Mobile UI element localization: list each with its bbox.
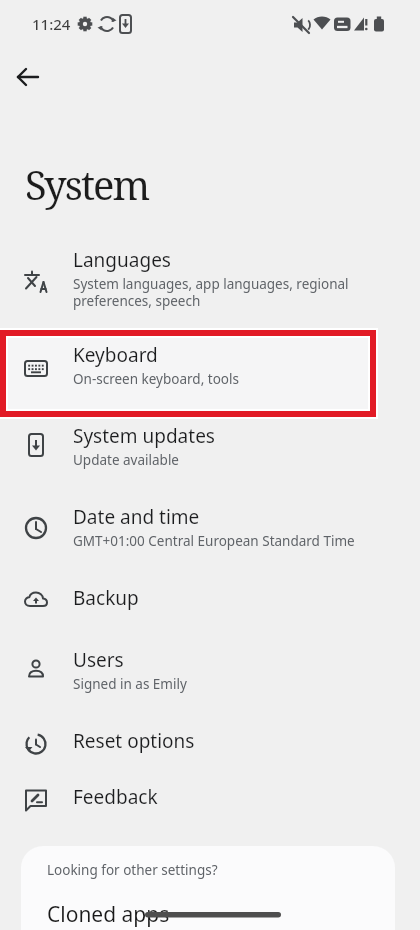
button[interactable]: System updates xyxy=(0,423,420,481)
button[interactable] xyxy=(10,59,46,95)
staticText: System xyxy=(25,157,149,211)
staticText: Looking for other settings? xyxy=(47,861,218,879)
button[interactable]: Languages xyxy=(0,247,420,313)
staticText: Feedback xyxy=(73,784,158,810)
staticText: System languages, app languages, regiona… xyxy=(73,275,349,310)
staticText: Date and time xyxy=(73,504,200,530)
staticText: System updates xyxy=(73,423,215,449)
button[interactable]: Backup xyxy=(0,585,420,637)
staticText: On-screen keyboard, tools xyxy=(73,370,239,388)
button[interactable]: Feedback xyxy=(0,784,420,836)
staticText: Signed in as Emily xyxy=(73,675,187,693)
staticText: On-screen keyboard, tools xyxy=(73,370,239,388)
button[interactable]: Keyboard xyxy=(0,342,420,400)
button[interactable]: Reset options xyxy=(0,728,420,780)
staticText: Reset options xyxy=(73,728,195,754)
staticText: Update available xyxy=(73,451,179,469)
button[interactable]: Date and time xyxy=(0,504,420,562)
button[interactable]: Looking for other settings? xyxy=(21,846,395,930)
staticText: Languages xyxy=(73,247,171,273)
staticText: GMT+01:00 Central European Standard Time xyxy=(73,532,355,550)
button[interactable]: Users xyxy=(0,647,420,705)
staticText: Keyboard xyxy=(73,342,158,368)
staticText: Keyboard xyxy=(73,342,158,368)
staticText: Cloned apps xyxy=(47,900,170,929)
staticText: 11:24 xyxy=(32,14,71,34)
staticText: Backup xyxy=(73,585,139,611)
staticText: Users xyxy=(73,647,124,673)
